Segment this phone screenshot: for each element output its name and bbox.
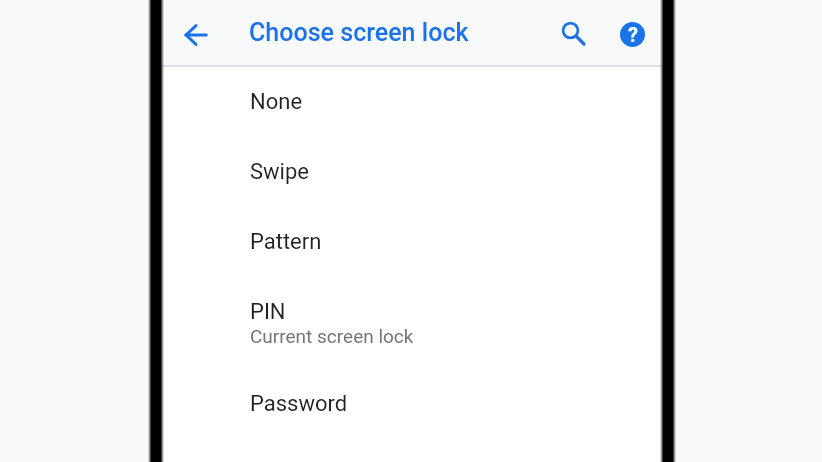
staticText: Pattern xyxy=(250,229,322,255)
button[interactable]: None xyxy=(162,67,662,137)
staticText: Current screen lock xyxy=(250,325,414,347)
staticText: PIN xyxy=(250,299,286,325)
staticText: Choose screen lock xyxy=(249,18,469,47)
button[interactable]: Pattern xyxy=(162,207,662,277)
button[interactable] xyxy=(552,13,592,53)
button[interactable]: Swipe xyxy=(162,137,662,207)
staticText: Swipe xyxy=(250,159,309,185)
button[interactable]: ? xyxy=(612,13,652,53)
staticText: ? xyxy=(628,23,638,46)
staticText: Password xyxy=(250,391,348,417)
button[interactable]: PIN xyxy=(162,277,662,369)
button[interactable] xyxy=(176,15,216,55)
button[interactable]: Password xyxy=(162,369,662,439)
staticText: None xyxy=(250,89,303,115)
